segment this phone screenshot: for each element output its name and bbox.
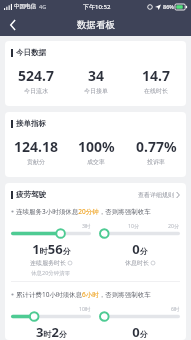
staticText: 今日数据 bbox=[16, 48, 46, 57]
staticText: 14.7 bbox=[142, 66, 170, 85]
staticText: 休息时长 bbox=[125, 259, 149, 267]
staticText: 成交率 bbox=[87, 158, 105, 166]
staticText: 下午10:52 bbox=[83, 3, 111, 11]
staticText: 连续服务3小时须休息20分钟，否则将强制收车 bbox=[16, 207, 151, 216]
staticText: 20分 bbox=[168, 222, 180, 229]
staticText: 数据看板 bbox=[77, 19, 115, 31]
staticText: 34 bbox=[88, 66, 105, 85]
staticText: 在线时长 bbox=[144, 87, 168, 95]
staticText: 连续服务时长 bbox=[30, 259, 66, 267]
button[interactable]: 查看详细规则 bbox=[138, 191, 180, 199]
staticText: 0分 bbox=[132, 240, 148, 258]
staticText: 3时2分 bbox=[36, 323, 67, 340]
staticText: 6时 bbox=[171, 305, 180, 312]
button[interactable]: 返回 bbox=[3, 15, 23, 35]
staticText: 10时 bbox=[79, 305, 91, 312]
staticText: 124.18 bbox=[14, 137, 58, 156]
staticText: 4G bbox=[39, 3, 47, 10]
staticText: 今日接单 bbox=[84, 87, 108, 95]
staticText: 3时 bbox=[82, 222, 91, 229]
staticText: 10分 bbox=[128, 222, 140, 229]
staticText: 查看详细规则 bbox=[138, 191, 174, 199]
staticText: 1时56分 bbox=[32, 240, 71, 258]
staticText: 接单指标 bbox=[16, 119, 46, 128]
staticText: 今日流水 bbox=[24, 87, 48, 95]
staticText: 累计计费10小时须休息6小时，否则将强制收车 bbox=[16, 290, 151, 299]
staticText: 贡献分 bbox=[27, 158, 45, 166]
staticText: 100% bbox=[78, 137, 115, 156]
staticText: 0.77% bbox=[136, 137, 177, 156]
staticText: 疲劳驾驶 bbox=[16, 190, 46, 199]
staticText: 投诉率 bbox=[147, 158, 165, 166]
staticText: 524.7 bbox=[18, 66, 54, 85]
staticText: 中国电信 bbox=[14, 3, 36, 10]
staticText: 0分 bbox=[132, 323, 148, 340]
staticText: 86% bbox=[163, 3, 174, 10]
staticText: 休息20分钟清零 bbox=[31, 269, 71, 277]
